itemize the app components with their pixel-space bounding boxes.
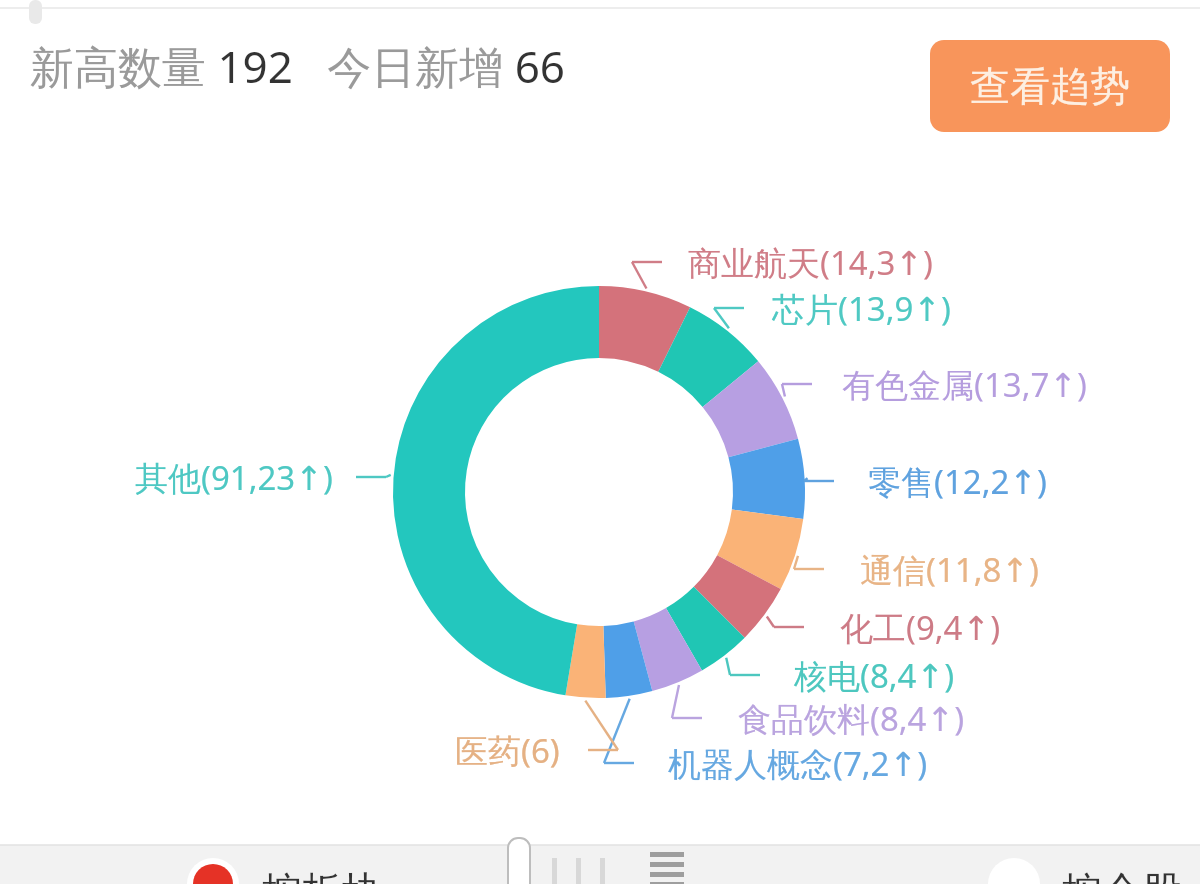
button[interactable]: 查看趋势 [930, 40, 1170, 132]
button[interactable]: 按个股 [960, 845, 1200, 884]
button[interactable]: 按板块 [160, 845, 460, 884]
